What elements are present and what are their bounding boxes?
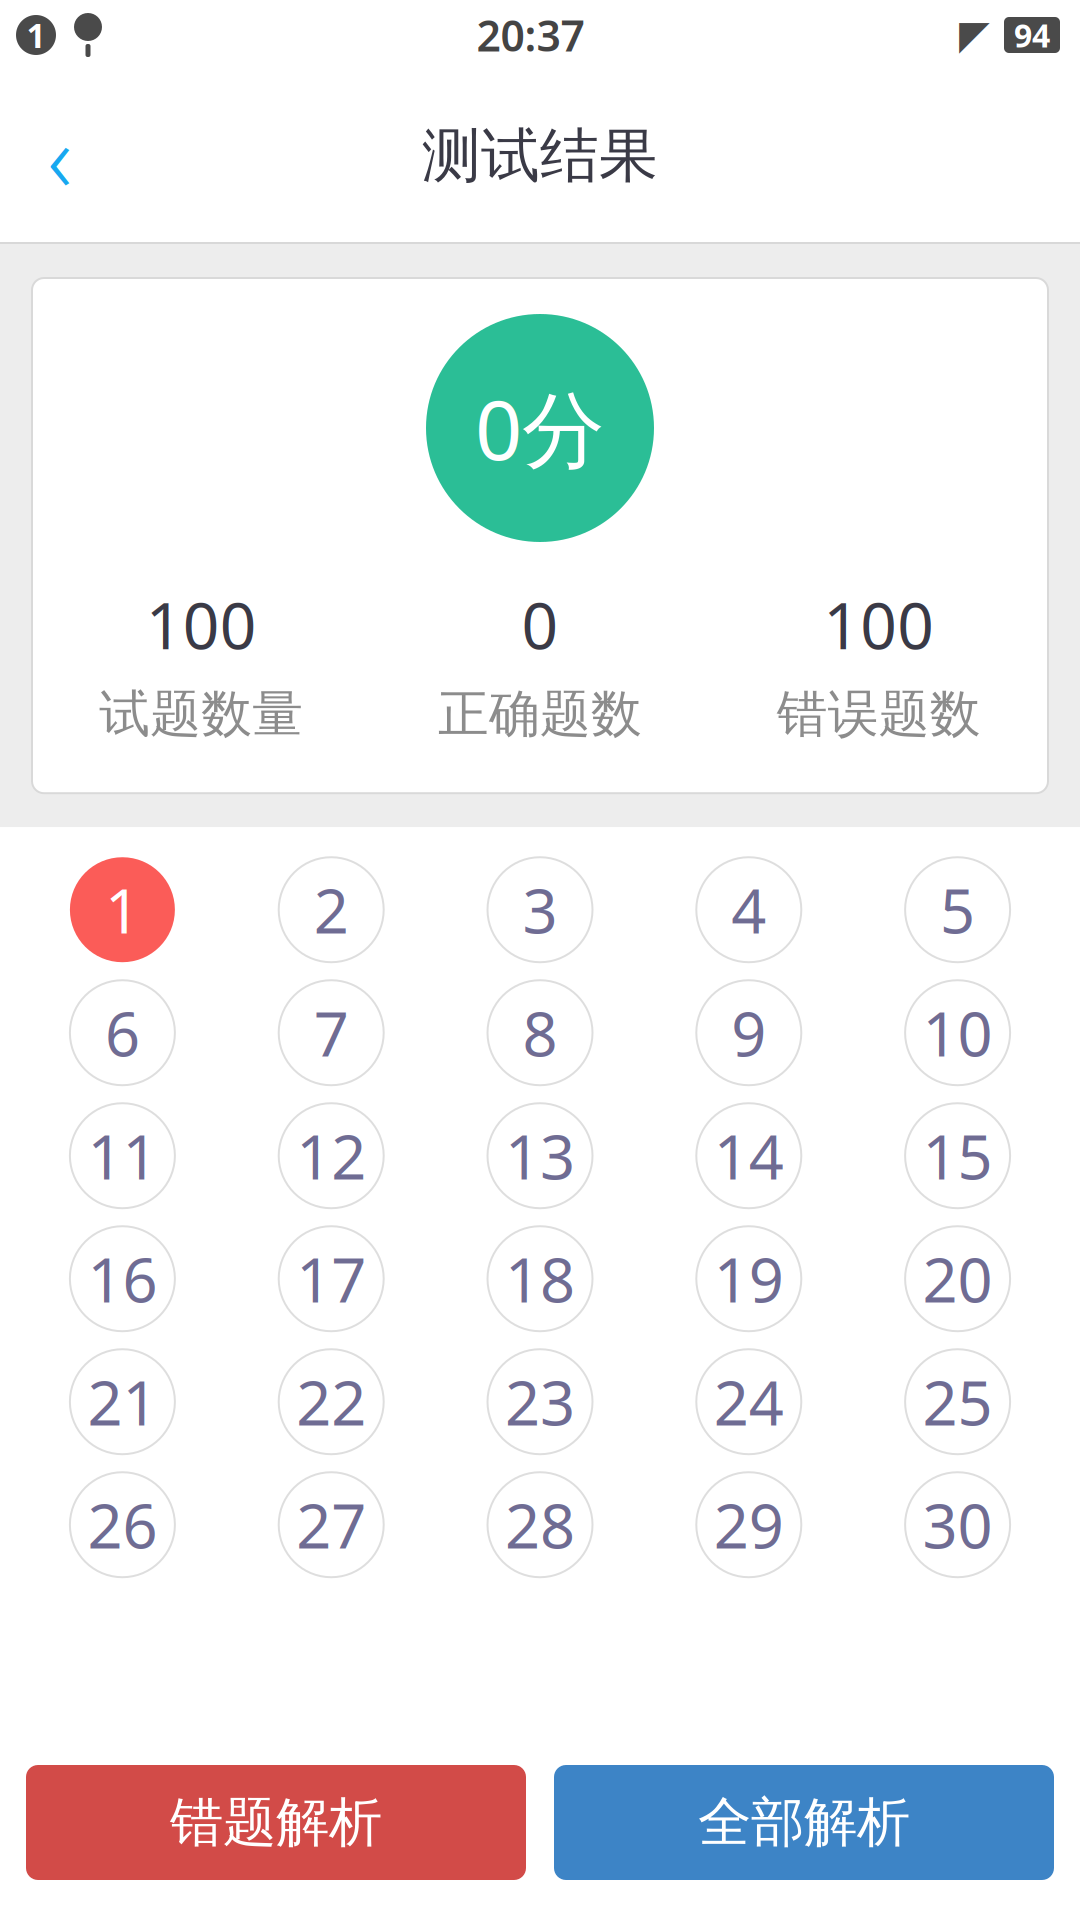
staticText: 11 xyxy=(87,1115,157,1196)
button[interactable]: 11 xyxy=(18,1103,227,1208)
button[interactable]: 30 xyxy=(853,1472,1062,1577)
staticText: 1 xyxy=(26,13,45,57)
staticText: 4 xyxy=(731,869,766,950)
staticText: 20 xyxy=(923,1238,993,1319)
staticText: 24 xyxy=(714,1361,784,1442)
button[interactable]: 23 xyxy=(436,1349,644,1454)
button[interactable]: 24 xyxy=(644,1349,853,1454)
staticText: ◤ xyxy=(959,12,990,58)
staticText: 16 xyxy=(87,1238,157,1319)
staticText: 13 xyxy=(505,1115,575,1196)
button[interactable]: Back xyxy=(0,96,120,216)
staticText: 全部解析 xyxy=(698,1790,910,1855)
button[interactable]: 13 xyxy=(436,1103,644,1208)
button[interactable]: 12 xyxy=(227,1103,436,1208)
staticText: 25 xyxy=(923,1361,993,1442)
staticText: 3 xyxy=(522,869,557,950)
staticText: 94 xyxy=(1014,14,1050,56)
staticText: 1 xyxy=(105,869,140,950)
staticText: 22 xyxy=(296,1361,366,1442)
staticText: 15 xyxy=(923,1115,993,1196)
staticText: 20:37 xyxy=(476,7,584,63)
staticText: 26 xyxy=(87,1484,157,1565)
button[interactable]: 4 xyxy=(644,857,853,962)
staticText: 14 xyxy=(714,1115,784,1196)
button[interactable]: 7 xyxy=(227,980,436,1085)
button[interactable]: 16 xyxy=(18,1226,227,1331)
staticText: 30 xyxy=(923,1484,993,1565)
button[interactable]: 20 xyxy=(853,1226,1062,1331)
button[interactable]: 6 xyxy=(18,980,227,1085)
button[interactable]: 19 xyxy=(644,1226,853,1331)
staticText: 测试结果 xyxy=(422,120,658,192)
button[interactable]: 17 xyxy=(227,1226,436,1331)
staticText: 21 xyxy=(87,1361,157,1442)
staticText: 100 xyxy=(823,582,934,667)
button[interactable]: 25 xyxy=(853,1349,1062,1454)
button[interactable]: 10 xyxy=(853,980,1062,1085)
button[interactable]: 9 xyxy=(644,980,853,1085)
button[interactable]: 15 xyxy=(853,1103,1062,1208)
staticText: 19 xyxy=(714,1238,784,1319)
staticText: 0分 xyxy=(475,373,605,483)
staticText: 2 xyxy=(314,869,349,950)
staticText: 7 xyxy=(314,992,349,1073)
staticText: 正确题数 xyxy=(438,683,642,745)
staticText: 0 xyxy=(521,582,558,667)
button[interactable]: 3 xyxy=(436,857,644,962)
button[interactable]: 22 xyxy=(227,1349,436,1454)
staticText: 错误题数 xyxy=(777,683,981,745)
staticText: 100 xyxy=(146,582,257,667)
button[interactable]: 2 xyxy=(227,857,436,962)
staticText: 10 xyxy=(923,992,993,1073)
staticText: 17 xyxy=(296,1238,366,1319)
button[interactable]: 27 xyxy=(227,1472,436,1577)
button[interactable]: 28 xyxy=(436,1472,644,1577)
staticText: 8 xyxy=(522,992,557,1073)
staticText: 12 xyxy=(296,1115,366,1196)
staticText: 28 xyxy=(505,1484,575,1565)
staticText: 错题解析 xyxy=(170,1790,382,1855)
staticText: 9 xyxy=(731,992,766,1073)
button[interactable]: 18 xyxy=(436,1226,644,1331)
staticText: 29 xyxy=(714,1484,784,1565)
staticText: 23 xyxy=(505,1361,575,1442)
staticText: 5 xyxy=(940,869,975,950)
button[interactable]: 1 xyxy=(18,857,227,962)
button[interactable]: 14 xyxy=(644,1103,853,1208)
button[interactable]: 5 xyxy=(853,857,1062,962)
button[interactable]: 全部解析 xyxy=(554,1765,1054,1880)
staticText: 27 xyxy=(296,1484,366,1565)
button[interactable]: 错题解析 xyxy=(26,1765,526,1880)
button[interactable]: 21 xyxy=(18,1349,227,1454)
staticText: ‹ xyxy=(47,94,72,218)
staticText: 18 xyxy=(505,1238,575,1319)
button[interactable]: 8 xyxy=(436,980,644,1085)
staticText: 试题数量 xyxy=(99,683,303,745)
button[interactable]: 26 xyxy=(18,1472,227,1577)
button[interactable]: 29 xyxy=(644,1472,853,1577)
staticText: 6 xyxy=(105,992,140,1073)
